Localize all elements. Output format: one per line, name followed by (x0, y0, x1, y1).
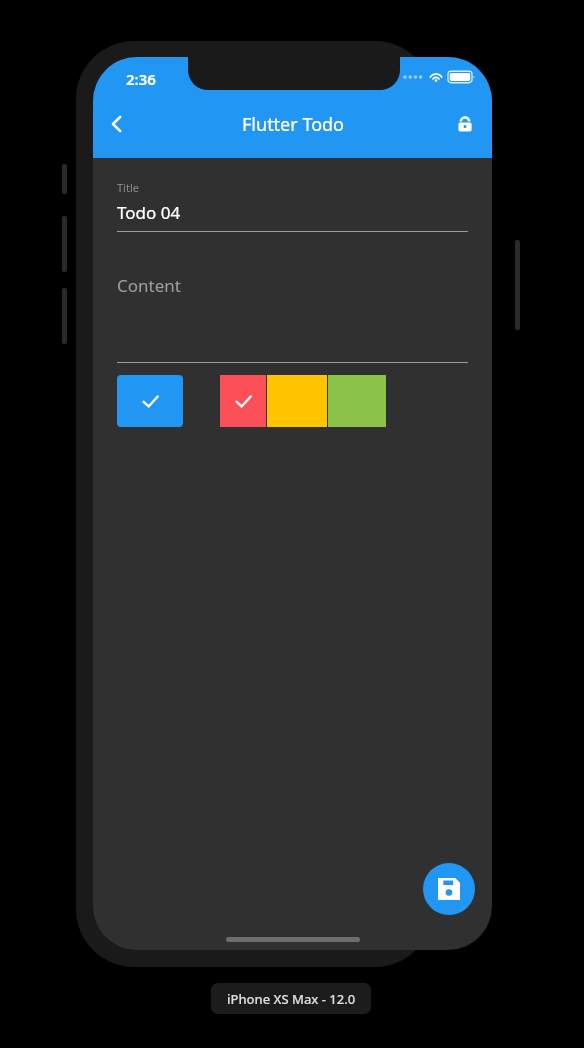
staticText: Flutter Todo (242, 112, 344, 137)
staticText: 2:36 (126, 69, 156, 89)
button[interactable]: Blue colour selected (117, 375, 183, 427)
button[interactable]: Content (117, 232, 468, 362)
staticText: Todo 04 (117, 201, 181, 224)
button[interactable]: Todo 04 (117, 198, 468, 226)
staticText: Title (117, 180, 139, 195)
button[interactable]: Red colour (220, 375, 266, 427)
button[interactable]: Lock (445, 104, 485, 144)
staticText: iPhone XS Max - 12.0 (227, 990, 356, 1008)
button[interactable]: Save (423, 863, 475, 915)
button[interactable]: Back (97, 104, 137, 144)
staticText: Content (117, 274, 181, 297)
